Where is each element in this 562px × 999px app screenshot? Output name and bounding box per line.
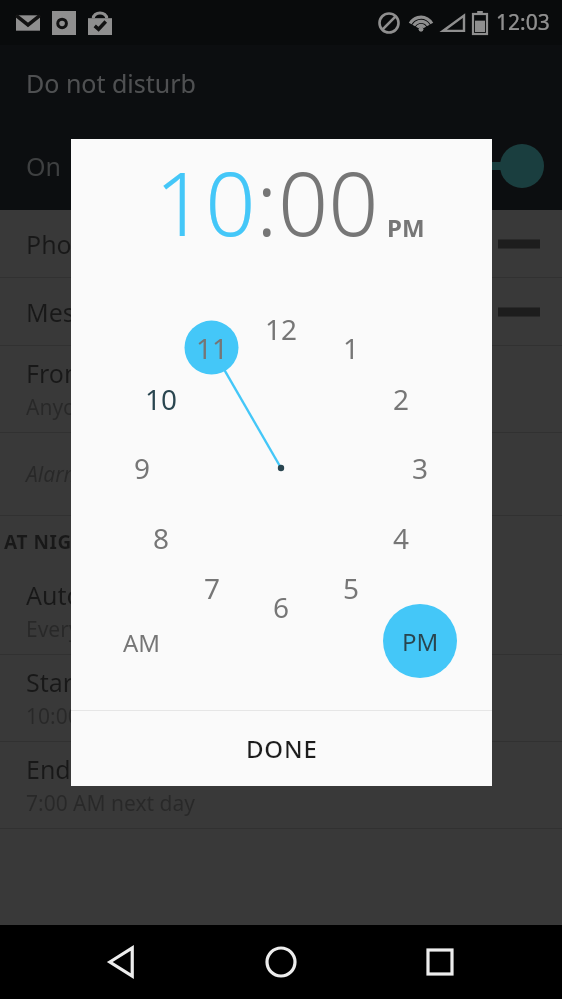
staticText: AT NIGHT (4, 529, 99, 555)
staticText: Every night (26, 615, 137, 644)
staticText: 1 (343, 329, 360, 367)
button[interactable]: DONE (71, 711, 492, 786)
staticText: 5 (343, 569, 360, 607)
button[interactable]: 10 (155, 142, 256, 262)
staticText: Messages (26, 295, 143, 329)
button[interactable]: 11 (184, 320, 240, 376)
staticText: End time (26, 752, 131, 786)
staticText: On (26, 149, 61, 183)
staticText: Phone calls (26, 227, 159, 261)
staticText: From (26, 356, 88, 390)
button[interactable]: End time (0, 742, 562, 828)
button[interactable]: Automatically turn on (0, 568, 562, 654)
button[interactable]: 00 (278, 142, 379, 262)
staticText: 7 (204, 569, 221, 607)
staticText: 2 (393, 380, 410, 418)
button[interactable]: 1 (323, 320, 379, 376)
staticText: PM (387, 211, 425, 244)
button[interactable]: Messages (0, 278, 562, 345)
button[interactable]: 8 (133, 510, 189, 566)
button[interactable]: Phone calls (0, 210, 562, 277)
button[interactable]: 4 (373, 510, 429, 566)
staticText: : (256, 142, 278, 262)
button[interactable]: Recent apps (403, 925, 477, 999)
staticText: AM (123, 626, 161, 659)
staticText: 10:00 PM (26, 702, 117, 731)
staticText: Do not disturb (26, 66, 196, 100)
staticText: Alarms are always important (26, 460, 296, 489)
staticText: 4 (393, 519, 410, 557)
button[interactable]: On (0, 121, 562, 210)
button[interactable]: 3 (392, 440, 448, 496)
button[interactable]: 10 (133, 371, 189, 427)
staticText: 00 (278, 142, 379, 262)
button[interactable]: From (0, 346, 562, 432)
button[interactable]: 5 (323, 560, 379, 616)
staticText: DONE (246, 732, 318, 765)
button[interactable]: AM (104, 604, 180, 680)
staticText: 3 (412, 449, 429, 487)
button[interactable]: 7 (184, 560, 240, 616)
staticText: 10 (145, 380, 178, 418)
staticText: 10 (155, 142, 256, 262)
button[interactable]: 12 (253, 301, 309, 357)
button[interactable]: PM (387, 211, 425, 244)
staticText: Start time (26, 665, 142, 699)
button[interactable]: Start time (0, 655, 562, 741)
staticText: Automatically turn on (26, 578, 280, 612)
staticText: 11 (196, 329, 229, 367)
button[interactable]: 2 (373, 371, 429, 427)
staticText: 7:00 AM next day (26, 789, 196, 818)
staticText: Anyone (26, 393, 101, 422)
staticText: 8 (153, 519, 170, 557)
button[interactable]: Back (85, 925, 159, 999)
button[interactable]: PM (382, 603, 458, 679)
button[interactable]: 6 (253, 579, 309, 635)
staticText: 12:03 (496, 8, 550, 37)
staticText: 6 (273, 588, 290, 626)
button[interactable]: Home (244, 925, 318, 999)
staticText: 9 (134, 449, 151, 487)
staticText: PM (402, 625, 439, 658)
button[interactable]: 9 (114, 440, 170, 496)
staticText: 12 (265, 310, 298, 348)
